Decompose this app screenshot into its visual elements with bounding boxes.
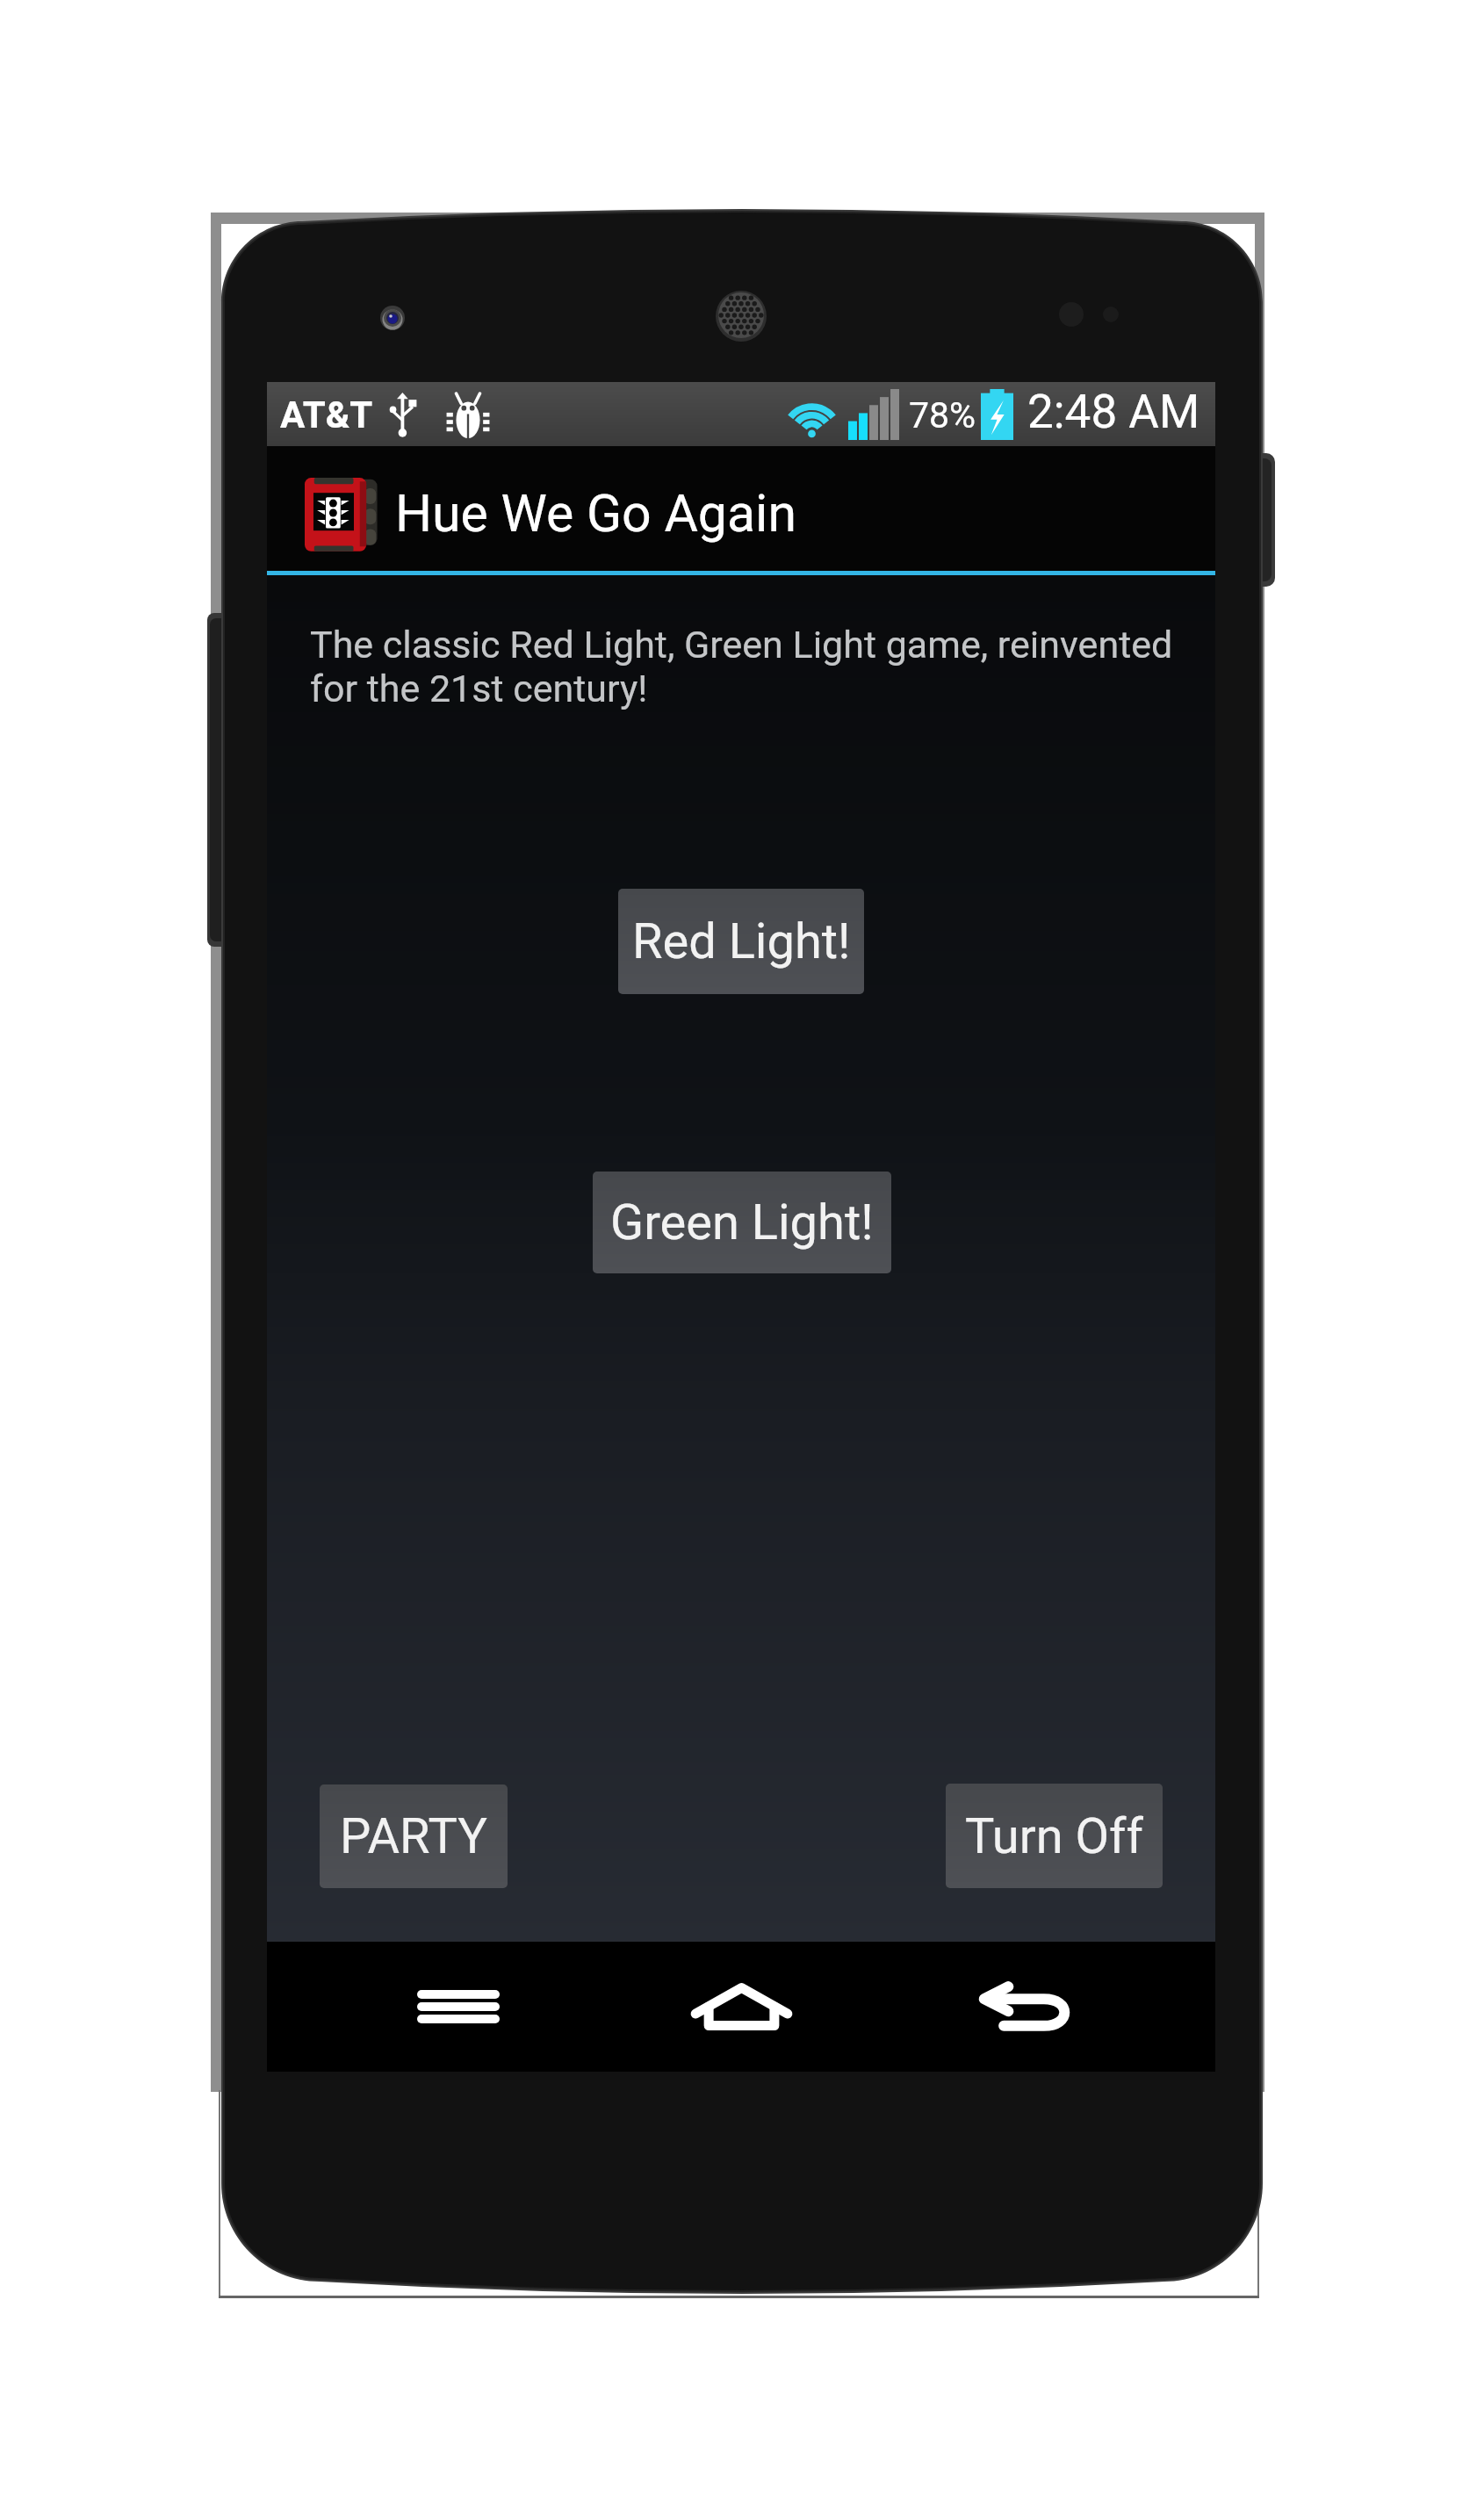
staticText: PARTY [340, 1807, 487, 1865]
button[interactable]: Home [680, 1942, 803, 2072]
button[interactable]: Menu [397, 1942, 520, 2072]
button[interactable]: Back [962, 1942, 1085, 2072]
staticText: The classic Red Light, Green Light game,… [310, 623, 1188, 710]
staticText: Green Light! [610, 1193, 874, 1251]
staticText: Turn Off [965, 1807, 1143, 1865]
staticText: 78% [909, 394, 976, 436]
button[interactable]: Green Light! [593, 1172, 891, 1273]
staticText: AT&T [280, 393, 373, 436]
button[interactable]: Red Light! [618, 889, 864, 994]
button[interactable]: Turn Off [946, 1784, 1163, 1888]
staticText: Hue We Go Again [395, 483, 797, 544]
button[interactable]: PARTY [320, 1784, 508, 1888]
staticText: Red Light! [632, 912, 851, 970]
staticText: 2:48 AM [1027, 385, 1200, 439]
